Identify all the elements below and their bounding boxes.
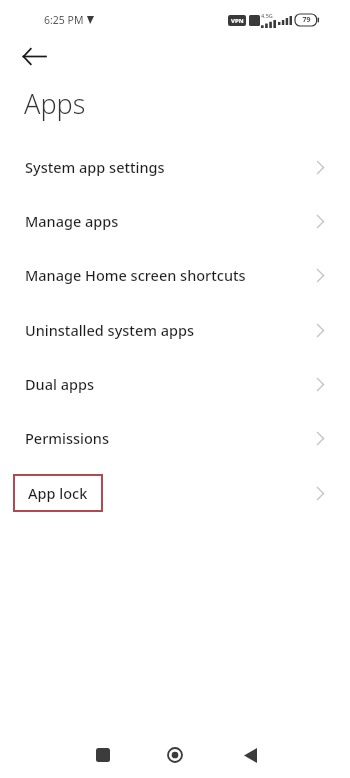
staticText: Permissions [25,428,109,448]
button[interactable]: Home [154,737,196,773]
staticText: Uninstalled system apps [25,320,195,340]
staticText: 79 [302,15,311,25]
staticText: Manage apps [25,211,119,231]
button[interactable]: Dual apps [0,357,350,411]
button[interactable]: Permissions [0,411,350,465]
staticText: Apps [24,85,86,122]
button[interactable]: Back [229,737,271,773]
staticText: System app settings [25,157,165,177]
staticText: Manage Home screen shortcuts [25,265,246,285]
staticText: VPN [231,17,244,25]
button[interactable]: Recent apps [82,737,124,773]
staticText: Dual apps [25,374,94,394]
button[interactable]: Back [12,40,56,72]
staticText: App lock [28,483,88,503]
button[interactable]: App lock [0,466,350,520]
button[interactable]: Uninstalled system apps [0,303,350,357]
button[interactable]: System app settings [0,140,350,194]
staticText: 6:25 PM [44,13,84,27]
button[interactable]: Manage Home screen shortcuts [0,248,350,302]
button[interactable]: Manage apps [0,194,350,248]
staticText: 4.5G [261,12,273,19]
